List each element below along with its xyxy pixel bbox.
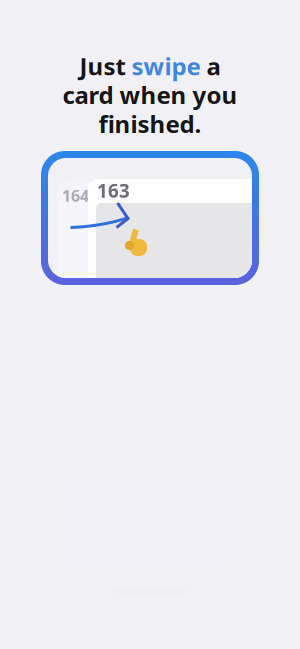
staticText: 163 <box>97 178 130 203</box>
staticText: a <box>200 50 220 82</box>
staticText: finished. <box>98 108 201 140</box>
staticText: 164 <box>62 185 89 206</box>
staticText: swipe <box>131 50 200 82</box>
staticText: Just <box>79 50 131 82</box>
button[interactable]: Swipe card demonstration <box>41 151 259 285</box>
staticText: card when you <box>62 79 237 111</box>
